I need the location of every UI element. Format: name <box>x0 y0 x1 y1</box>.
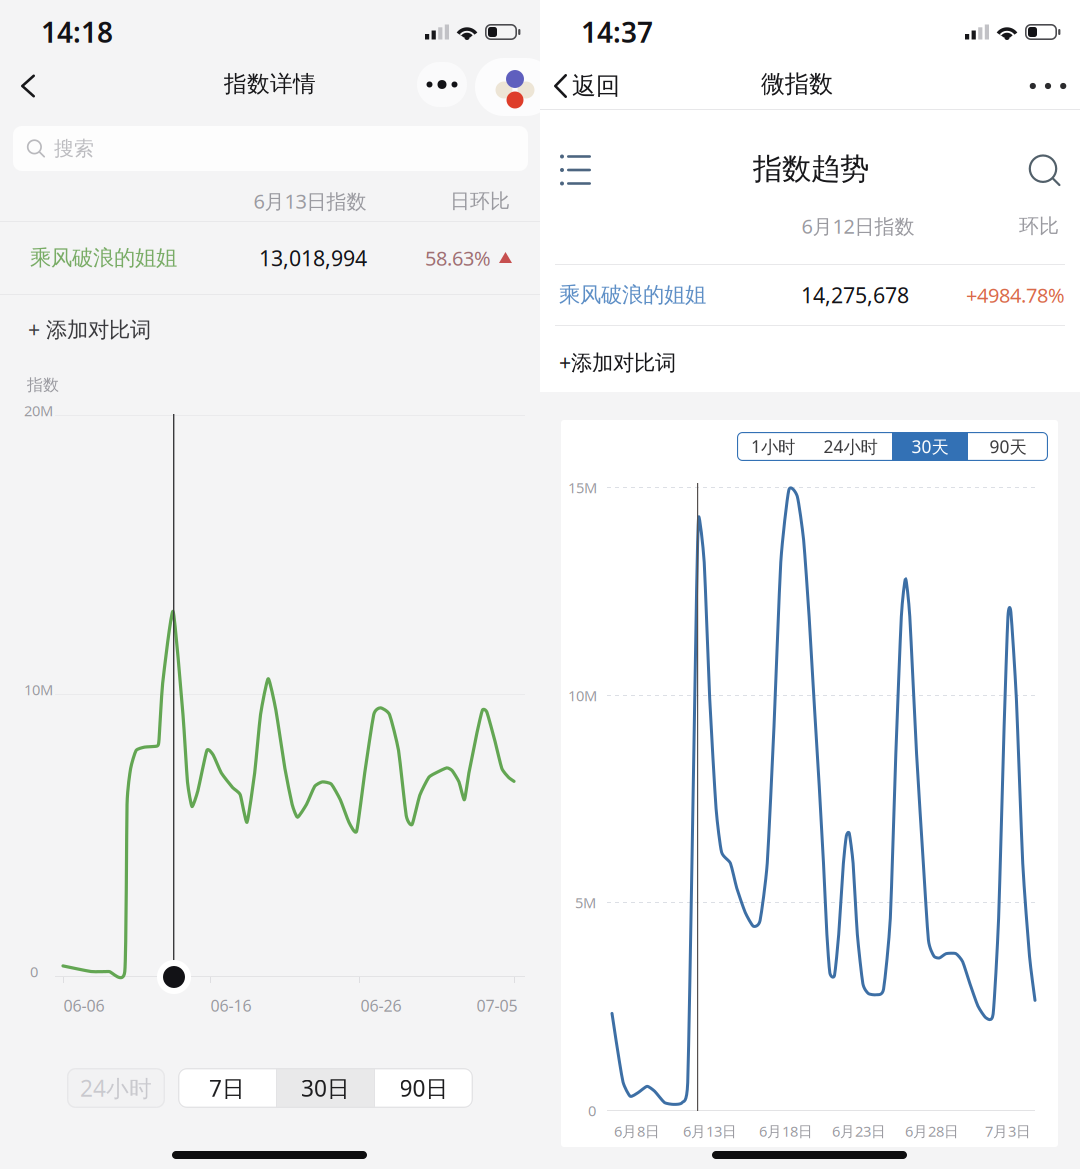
staticText: 搜索 <box>54 136 94 161</box>
staticText: 06-26 <box>360 995 401 1016</box>
staticText: 0 <box>30 962 38 981</box>
button[interactable]: 7日 <box>178 1068 276 1108</box>
staticText: 返回 <box>572 71 620 101</box>
staticText: 7日 <box>209 1073 245 1103</box>
staticText: 14:18 <box>41 13 113 51</box>
staticText: 6月12日指数 <box>801 213 914 239</box>
staticText: 乘风破浪的姐姐 <box>30 245 177 271</box>
staticText: 6月18日 <box>759 1121 813 1141</box>
staticText: 14:37 <box>581 13 653 51</box>
staticText: 10M <box>24 680 53 699</box>
staticText: 6月28日 <box>905 1121 959 1141</box>
staticText: 6月23日 <box>832 1121 886 1141</box>
button[interactable]: More <box>1010 63 1080 109</box>
button[interactable]: Search <box>1011 142 1079 198</box>
staticText: 5M <box>575 893 596 912</box>
button[interactable]: 搜索 <box>13 126 528 171</box>
staticText: 日环比 <box>450 189 510 213</box>
staticText: 1小时 <box>751 435 795 458</box>
button[interactable]: + 添加对比词 <box>0 306 248 352</box>
staticText: 指数趋势 <box>753 151 869 187</box>
button[interactable]: 30天 <box>892 432 968 461</box>
button[interactable]: 返回 <box>540 63 664 109</box>
staticText: 指数详情 <box>224 70 316 98</box>
staticText: 乘风破浪的姐姐 <box>559 282 706 308</box>
staticText: 24小时 <box>80 1073 152 1103</box>
staticText: 07-05 <box>476 995 517 1016</box>
staticText: 30日 <box>301 1073 350 1103</box>
staticText: 15M <box>568 478 597 497</box>
staticText: 90日 <box>399 1073 448 1103</box>
staticText: 微指数 <box>761 69 833 99</box>
button[interactable]: More <box>417 62 467 107</box>
button[interactable]: 24小时 <box>67 1068 165 1108</box>
staticText: + 添加对比词 <box>28 315 151 343</box>
staticText: 0 <box>588 1101 596 1120</box>
staticText: 06-06 <box>63 995 104 1016</box>
staticText: 环比 <box>1019 214 1059 238</box>
staticText: 58.63% <box>425 245 491 271</box>
button[interactable]: 30日 <box>277 1068 374 1108</box>
button[interactable]: Profile <box>475 58 555 116</box>
button[interactable]: +添加对比词 <box>540 339 779 385</box>
staticText: 13,018,994 <box>259 244 367 272</box>
staticText: 指数 <box>27 375 59 395</box>
button[interactable]: 90日 <box>375 1068 473 1108</box>
staticText: 10M <box>568 686 597 705</box>
staticText: 20M <box>24 401 53 420</box>
staticText: +4984.78% <box>966 282 1065 308</box>
staticText: 30天 <box>911 435 948 458</box>
staticText: 6月8日 <box>614 1121 660 1141</box>
button[interactable]: List <box>541 142 611 198</box>
staticText: 90天 <box>989 435 1026 458</box>
button[interactable]: Back <box>0 62 56 110</box>
staticText: 7月3日 <box>985 1121 1031 1141</box>
staticText: 6月13日指数 <box>253 188 366 214</box>
button[interactable]: 1小时 <box>737 432 809 461</box>
staticText: 24小时 <box>823 435 877 458</box>
staticText: +添加对比词 <box>559 348 676 376</box>
button[interactable]: 90天 <box>968 432 1048 461</box>
button[interactable]: 24小时 <box>809 432 892 461</box>
staticText: 14,275,678 <box>801 281 909 309</box>
staticText: 06-16 <box>210 995 251 1016</box>
staticText: 6月13日 <box>683 1121 737 1141</box>
